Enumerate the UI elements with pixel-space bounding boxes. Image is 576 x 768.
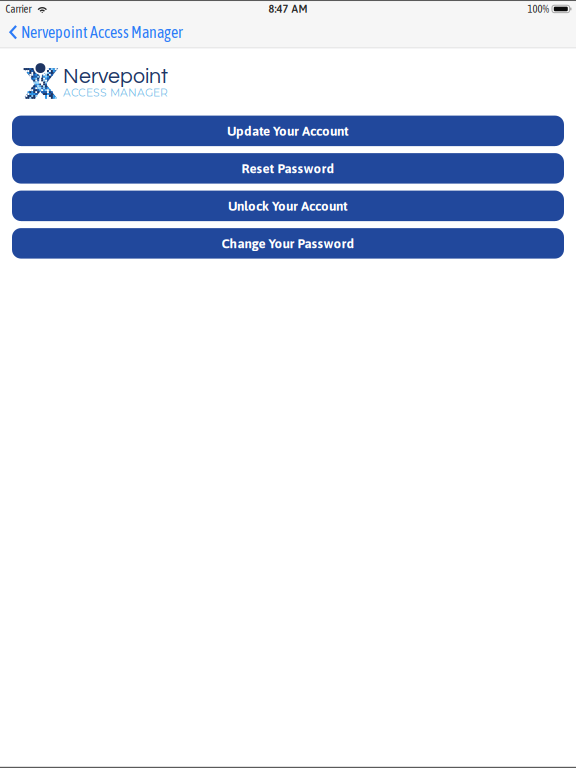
staticText: Reset Password [241,161,334,176]
staticText: Change Your Password [221,236,354,251]
staticText: 100% [527,3,549,15]
staticText: Nervepoint [63,66,168,88]
staticText: Carrier [5,3,31,15]
button[interactable]: Update Your Account [12,116,564,146]
staticText: ACCESS MANAGER [63,86,168,99]
staticText: Unlock Your Account [228,198,348,213]
button[interactable]: Unlock Your Account [12,191,564,221]
staticText: Update Your Account [227,123,349,138]
staticText: Nervepoint Access Manager [21,23,183,41]
staticText: 8:47 AM [268,3,307,15]
button[interactable]: Change Your Password [12,228,564,259]
button[interactable]: Nervepoint Access Manager [0,17,193,48]
button[interactable]: Reset Password [12,153,564,184]
